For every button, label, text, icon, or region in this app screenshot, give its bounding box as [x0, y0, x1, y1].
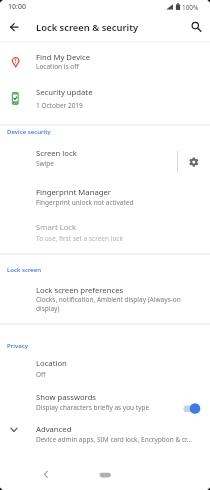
- staticText: Find My Device: [36, 52, 91, 62]
- staticText: Location: [36, 358, 67, 368]
- staticText: Lock screen & security: [36, 21, 139, 34]
- staticText: 10:00: [8, 2, 26, 12]
- staticText: Device admin apps, SIM card lock, Encryp…: [36, 435, 192, 444]
- button[interactable]: Screen lock: [0, 140, 178, 177]
- button[interactable]: Find My Device: [0, 46, 210, 86]
- staticText: To use, first set a screen lock: [36, 234, 123, 243]
- staticText: Off: [36, 370, 46, 379]
- button[interactable]: [34, 462, 62, 488]
- button[interactable]: [178, 140, 210, 177]
- button[interactable]: Location: [0, 352, 210, 386]
- button[interactable]: Fingerprint Manager: [0, 182, 210, 216]
- staticText: Swipe: [36, 159, 55, 168]
- staticText: Privacy: [7, 341, 28, 349]
- button[interactable]: [186, 18, 206, 36]
- staticText: Fingerprint Manager: [36, 187, 111, 197]
- button[interactable]: Lock screen preferences: [0, 279, 210, 321]
- staticText: Lock screen: [7, 265, 42, 273]
- staticText: Fingerprint unlock not activated: [36, 198, 134, 207]
- staticText: Smart Lock: [36, 222, 77, 232]
- staticText: 100%: [182, 3, 199, 12]
- button[interactable]: [91, 462, 119, 488]
- staticText: Screen lock: [36, 148, 77, 158]
- staticText: 1 October 2019: [36, 101, 83, 110]
- button[interactable]: Advanced: [0, 420, 210, 450]
- staticText: Advanced: [36, 424, 72, 434]
- button[interactable]: [4, 19, 26, 37]
- staticText: Device security: [7, 127, 51, 135]
- staticText: Display characters briefly as you type: [36, 403, 150, 412]
- button[interactable]: Security update: [0, 86, 210, 125]
- staticText: Lock screen preferences: [36, 285, 124, 295]
- staticText: Location is off: [36, 62, 79, 71]
- staticText: Clocks, notification, Ambient display (A…: [36, 295, 181, 312]
- button[interactable]: Show passwords: [0, 386, 210, 420]
- staticText: Show passwords: [36, 392, 97, 402]
- button[interactable]: Smart Lock: [0, 217, 210, 251]
- staticText: Security update: [36, 87, 93, 97]
